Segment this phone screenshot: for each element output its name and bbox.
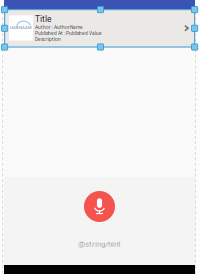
staticText: HABNAAM [10, 25, 32, 30]
staticText: Author : AuthorName [35, 25, 83, 30]
staticText: • • • [17, 30, 22, 33]
staticText: Published At : Published Value [35, 31, 102, 36]
button[interactable]: Start voice search [84, 191, 115, 222]
button[interactable]: HABNAAM [4, 10, 195, 47]
staticText: @string/hint [78, 239, 121, 249]
staticText: Description [35, 37, 61, 42]
staticText: Title [35, 14, 52, 24]
